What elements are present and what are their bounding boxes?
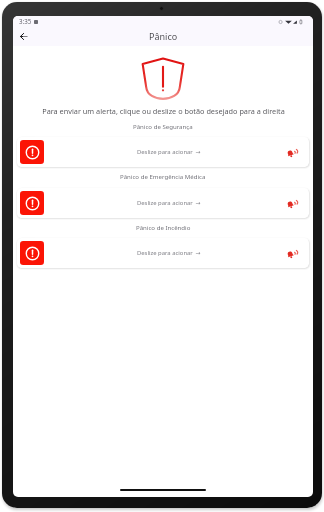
staticText: Deslize para acionar →	[137, 199, 201, 207]
staticText: Deslize para acionar →	[137, 249, 201, 257]
button[interactable]: Deslize para acionar →	[17, 137, 309, 167]
staticText: Para enviar um alerta, clique ou deslize…	[42, 106, 285, 116]
staticText: Pânico de Incêndio	[136, 223, 191, 231]
staticText: Pânico	[149, 30, 178, 42]
button[interactable]: Voltar	[16, 29, 30, 43]
button[interactable]: Deslize para acionar →	[17, 188, 309, 218]
button[interactable]: Deslize para acionar →	[17, 238, 309, 268]
staticText: Deslize para acionar →	[137, 148, 201, 156]
staticText: Pânico de Segurança	[133, 122, 193, 130]
staticText: 3:35	[19, 17, 32, 25]
staticText: Pânico de Emergência Médica	[120, 172, 206, 180]
